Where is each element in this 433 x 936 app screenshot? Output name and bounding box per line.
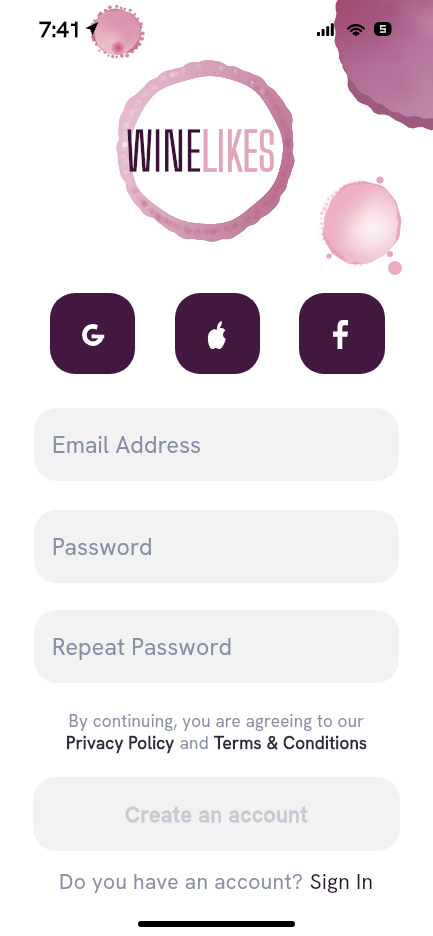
staticText: WINELIKES: [126, 121, 276, 182]
staticText: Password: [52, 532, 153, 562]
button[interactable]: Email Address: [34, 408, 399, 481]
staticText: Do you have an account?: [59, 868, 304, 895]
staticText: 7:41: [39, 15, 82, 44]
staticText: By continuing, you are agreeing to our: [0, 710, 433, 732]
button[interactable]: Terms & Conditions: [214, 732, 368, 754]
button[interactable]: Password: [34, 510, 399, 583]
staticText: Repeat Password: [52, 632, 233, 662]
button[interactable]: Repeat Password: [34, 610, 399, 683]
staticText: Create an account: [125, 801, 309, 828]
button[interactable]: Sign in with Apple: [175, 293, 260, 374]
button[interactable]: Privacy Policy: [66, 732, 175, 754]
staticText: and: [175, 732, 214, 754]
button[interactable]: Create an account: [33, 777, 400, 851]
button[interactable]: Sign In: [304, 868, 374, 895]
button[interactable]: Sign in with Google: [50, 293, 135, 374]
staticText: Email Address: [52, 430, 202, 460]
button[interactable]: Sign in with Facebook: [299, 293, 385, 374]
